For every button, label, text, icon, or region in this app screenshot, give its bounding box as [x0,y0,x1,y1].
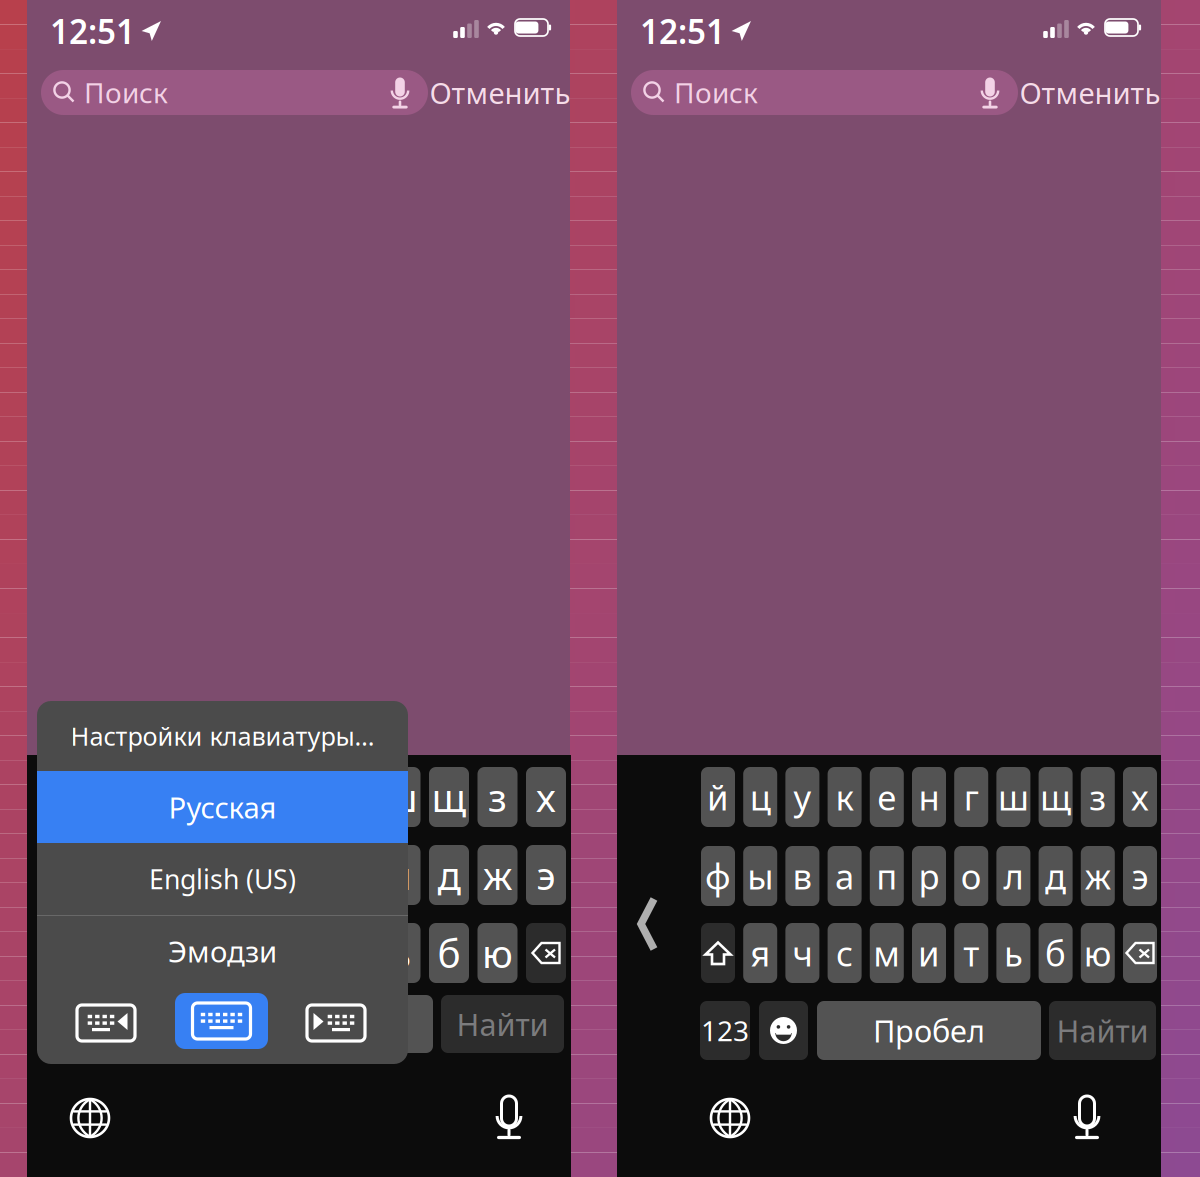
button[interactable]: в [138,845,178,905]
button[interactable]: ю [1081,923,1115,983]
button[interactable]: Emoji [107,995,164,1053]
button[interactable]: б [1039,923,1073,983]
button[interactable]: э [526,845,566,905]
button[interactable]: ч [138,923,178,983]
button[interactable]: Next [305,1001,367,1045]
button[interactable]: щ [429,767,469,827]
button[interactable]: ж [477,845,517,905]
button[interactable]: т [954,923,988,983]
button[interactable]: Найти [1049,1001,1156,1060]
button[interactable]: Delete [1123,923,1157,983]
button[interactable]: Next keyboard [709,1097,751,1139]
button[interactable]: е [870,767,904,827]
button[interactable]: э [1123,846,1157,906]
button[interactable]: 123 [700,1001,750,1060]
button[interactable]: м [870,923,904,983]
button[interactable]: Настройки клавиатуры… [37,701,408,771]
staticText: о [961,853,982,899]
button[interactable]: Отменить [440,71,560,114]
button[interactable]: ь [996,923,1030,983]
button[interactable]: л [996,846,1030,906]
button[interactable]: я [743,923,777,983]
button[interactable]: ф [701,846,735,906]
button[interactable]: с [828,923,862,983]
button[interactable]: Dictate [1073,1095,1101,1139]
button[interactable]: ж [1081,846,1115,906]
button[interactable]: к [828,767,862,827]
button[interactable]: Delete [526,923,566,983]
button[interactable]: у [138,767,178,827]
button[interactable]: в [785,846,819,906]
button[interactable]: г [954,767,988,827]
button[interactable]: Пробел [175,995,433,1053]
button[interactable]: б [429,923,469,983]
button[interactable]: з [477,767,517,827]
button[interactable]: ч [785,923,819,983]
button[interactable]: щ [1039,767,1073,827]
button[interactable]: н [912,767,946,827]
staticText: с [836,930,853,976]
button[interactable]: к [186,767,226,827]
button[interactable]: а [828,846,862,906]
button[interactable]: х [526,767,566,827]
staticText: Русская [168,787,276,826]
button[interactable]: Search [41,70,428,115]
button[interactable]: Shift [701,923,735,983]
button[interactable]: п [870,846,904,906]
button[interactable]: Русская [37,771,408,843]
button[interactable]: ь [380,923,420,983]
button[interactable]: г [332,767,372,827]
button[interactable]: й [41,767,81,827]
button[interactable]: д [429,845,469,905]
button[interactable]: Эмодзи [37,915,408,987]
button[interactable]: Найти [441,995,564,1053]
button[interactable]: ц [89,767,129,827]
button[interactable]: у [785,767,819,827]
button[interactable]: п [235,845,275,905]
button[interactable]: Search [631,70,1018,115]
button[interactable]: Dictate [495,1095,523,1139]
button[interactable]: д [1039,846,1073,906]
button[interactable]: Отменить [1030,71,1150,114]
button[interactable]: р [912,846,946,906]
button[interactable]: н [283,767,323,827]
button[interactable]: Пробел [817,1001,1041,1060]
button[interactable]: о [954,846,988,906]
button[interactable]: ы [743,846,777,906]
button[interactable]: Emoji [759,1001,808,1060]
button[interactable]: ю [477,923,517,983]
button[interactable]: х [1123,767,1157,827]
button[interactable]: е [235,767,275,827]
button[interactable]: с [186,923,226,983]
button[interactable]: Previous [75,1001,137,1045]
button[interactable]: а [186,845,226,905]
button[interactable]: English (US) [37,843,408,915]
button[interactable]: 123 [39,995,97,1053]
button[interactable]: и [912,923,946,983]
button[interactable]: й [701,767,735,827]
button[interactable]: м [235,923,275,983]
button[interactable]: ш [380,767,420,827]
button[interactable]: л [380,845,420,905]
button[interactable]: Keyboard [175,993,268,1049]
button[interactable]: ш [996,767,1030,827]
staticText: ы [747,853,773,899]
button[interactable]: Next keyboard [69,1097,111,1139]
button[interactable]: р [283,845,323,905]
button[interactable]: ц [743,767,777,827]
button[interactable]: з [1081,767,1115,827]
staticText: и [918,930,940,976]
